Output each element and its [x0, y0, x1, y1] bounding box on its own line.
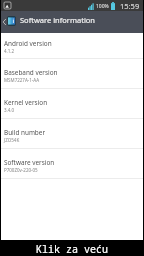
- staticText: Android version: [4, 39, 52, 48]
- button[interactable]: Software version: [1, 149, 143, 179]
- staticText: MSM7227A-1-AA: [4, 77, 40, 83]
- button[interactable]: Baseband version: [1, 59, 143, 89]
- button[interactable]: Android version: [1, 33, 143, 59]
- staticText: Build number: [4, 128, 46, 137]
- staticText: Baseband version: [4, 68, 58, 77]
- button[interactable]: Build number: [1, 119, 143, 149]
- staticText: 15:59: [120, 1, 140, 11]
- button[interactable]: Kernel version: [1, 89, 143, 119]
- staticText: JZO54K: [4, 137, 20, 143]
- button[interactable]: Back: [1, 11, 8, 33]
- staticText: 100%: [96, 3, 109, 10]
- staticText: Software information: [20, 15, 95, 25]
- staticText: Klik za veću: [36, 242, 108, 256]
- staticText: Software version: [4, 158, 55, 167]
- staticText: Kernel version: [4, 98, 48, 107]
- staticText: 3.4.0: [4, 107, 15, 113]
- staticText: 4.1.2: [4, 48, 15, 54]
- staticText: P700Z0v-220-05: [4, 167, 38, 173]
